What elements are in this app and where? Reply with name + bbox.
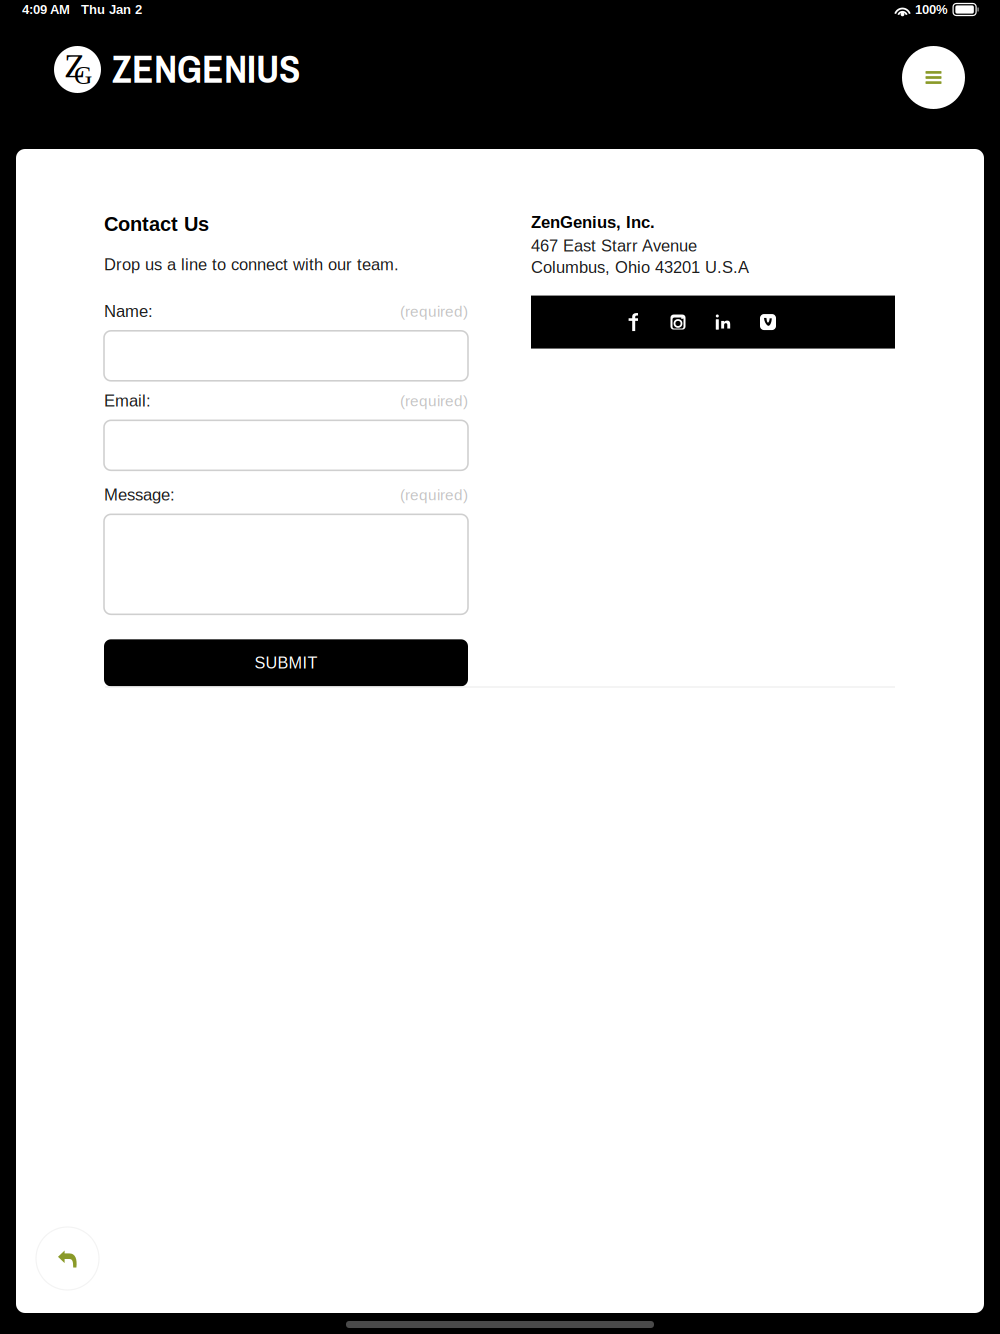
button[interactable]: Menu [902,46,965,109]
staticText: (required) [400,303,468,320]
staticText: G [74,61,92,90]
button[interactable]: Name: [104,331,468,381]
staticText: Drop us a line to connect with our team. [104,255,399,274]
staticText: 100% [915,2,948,17]
staticText: Columbus, Ohio 43201 U.S.A [531,258,749,277]
button[interactable]: LinkedIn [711,304,735,340]
staticText: ZenGenius, Inc. [531,213,655,232]
staticText: Contact Us [104,213,209,235]
button[interactable]: SUBMIT [104,639,468,686]
button[interactable]: Vimeo [756,304,780,340]
staticText: Message: [104,485,175,504]
button[interactable]: Facebook [621,304,645,340]
staticText: (required) [400,486,468,503]
staticText: ZENGENIUS [112,42,301,95]
button[interactable]: Instagram [666,304,690,340]
button[interactable]: Message: [104,514,468,614]
staticText: SUBMIT [254,654,317,672]
staticText: 467 East Starr Avenue [531,237,697,255]
staticText: Name: [104,302,153,321]
staticText: (required) [400,392,468,409]
staticText: 4:09 AM [22,2,70,17]
staticText: Z [64,46,85,85]
staticText: Email: [104,391,151,410]
button[interactable]: Email: [104,420,468,470]
staticText: Thu Jan 2 [81,2,142,17]
button[interactable]: Back [36,1227,99,1290]
